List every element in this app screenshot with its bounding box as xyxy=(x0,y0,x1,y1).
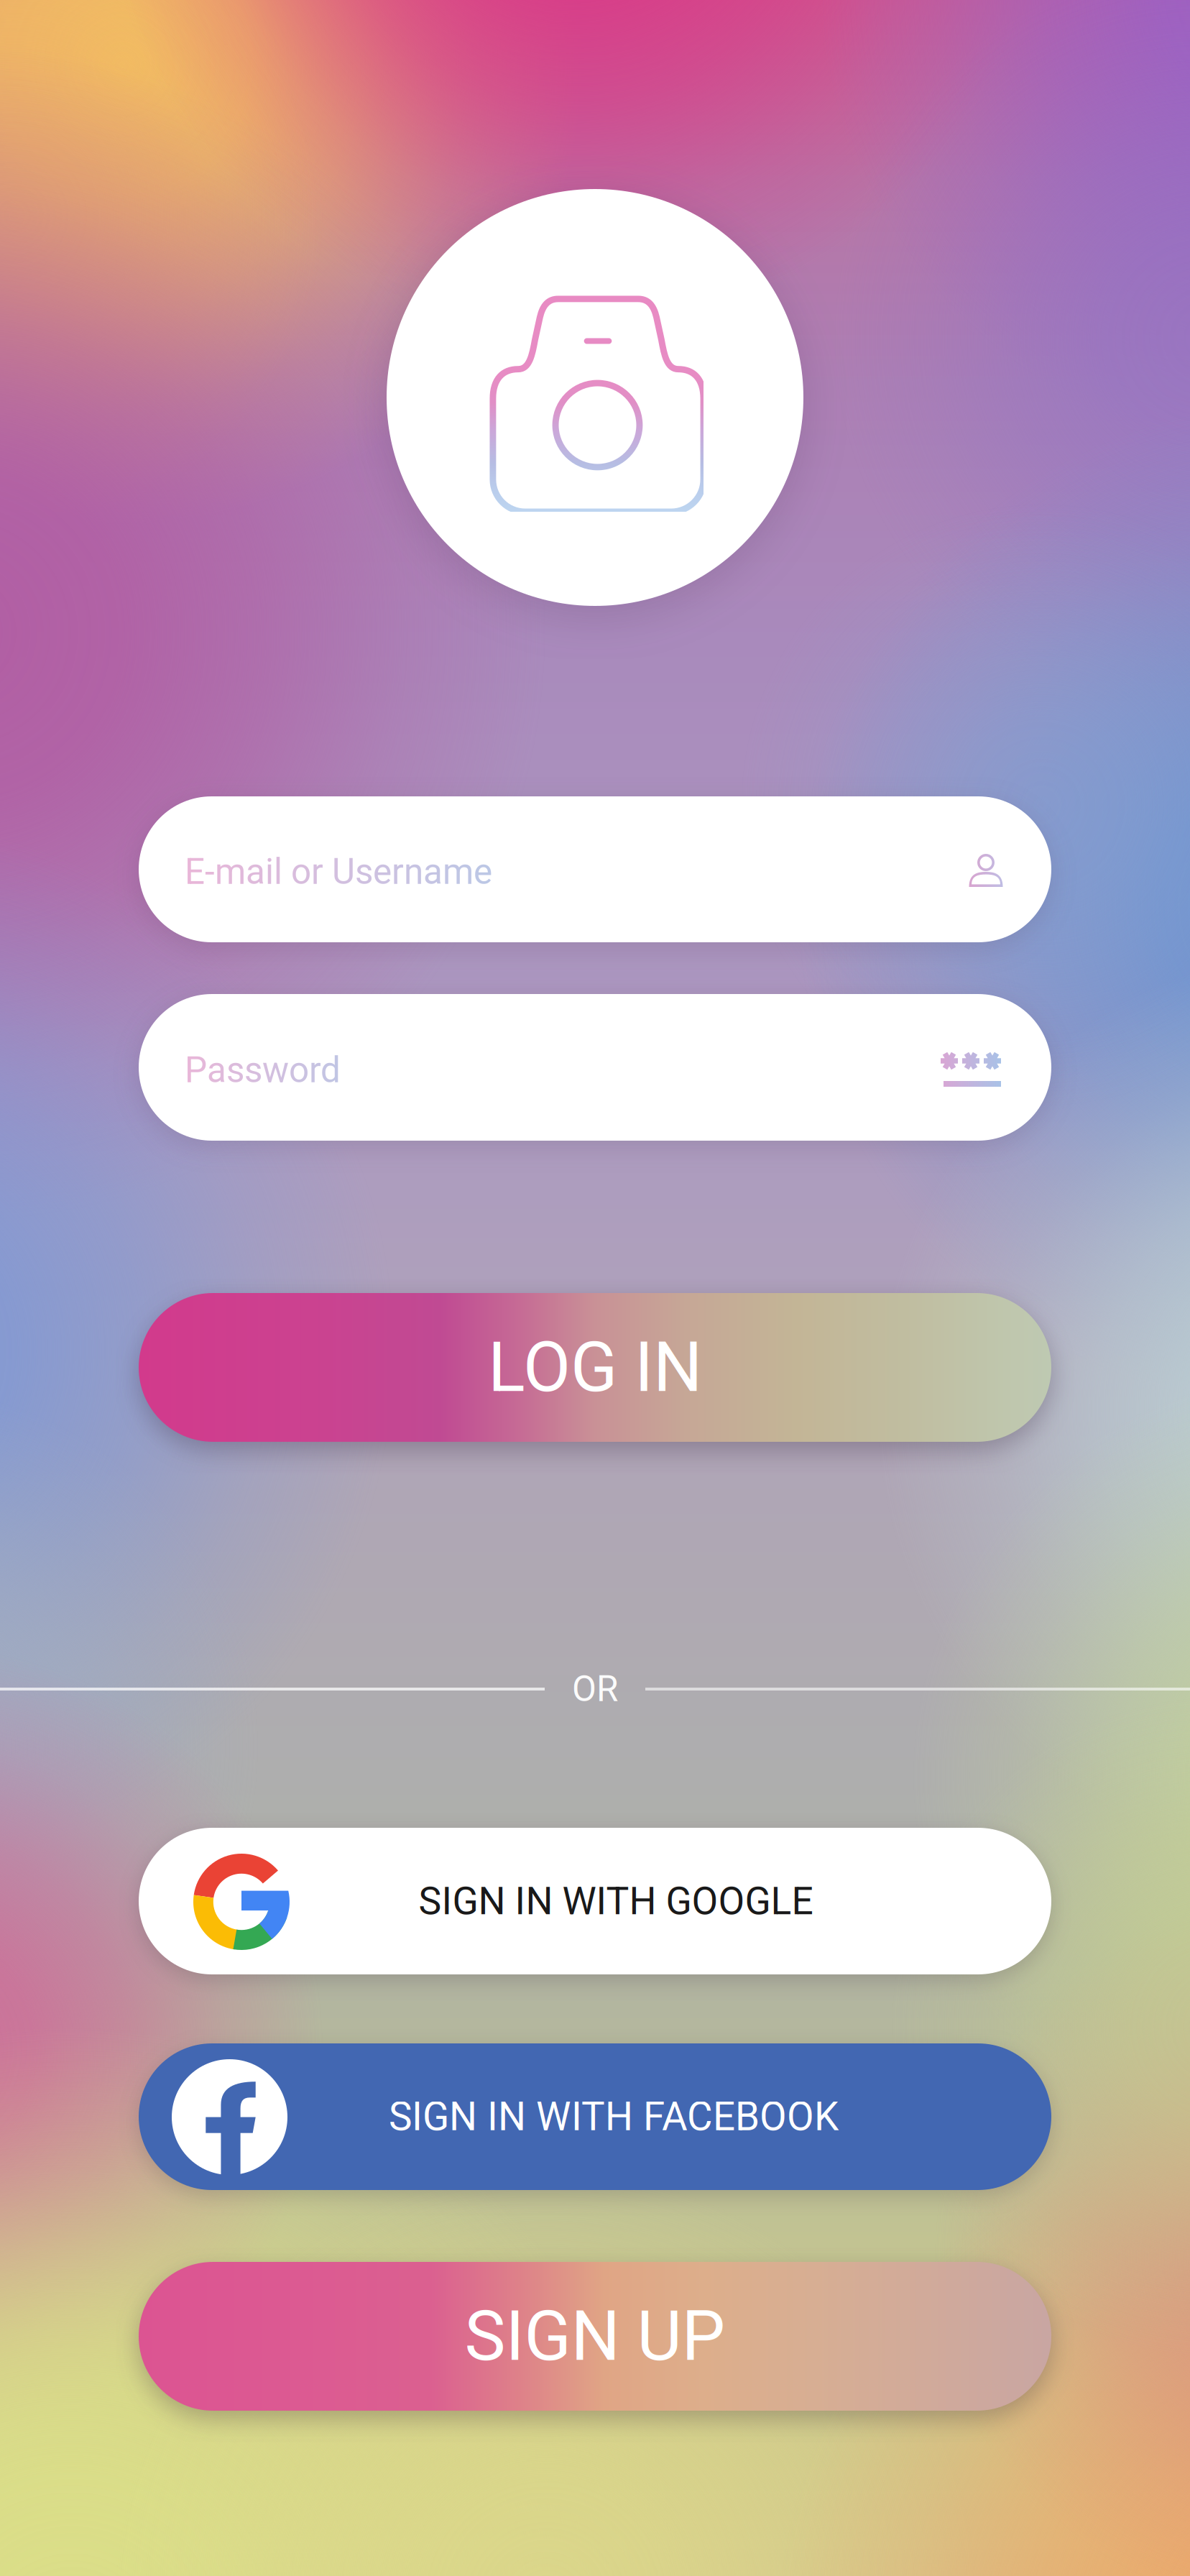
button[interactable]: SIGN IN WITH GOOGLE xyxy=(139,1828,1051,1974)
staticText: LOG IN xyxy=(488,1327,702,1408)
button[interactable] xyxy=(139,796,1051,942)
button[interactable] xyxy=(139,994,1051,1141)
staticText: SIGN IN WITH GOOGLE xyxy=(419,1879,813,1924)
button[interactable]: SIGN UP xyxy=(139,2262,1051,2411)
button[interactable]: LOG IN xyxy=(139,1293,1051,1442)
button[interactable]: SIGN IN WITH FACEBOOK xyxy=(139,2043,1051,2190)
staticText: SIGN IN WITH FACEBOOK xyxy=(389,2094,839,2140)
staticText: SIGN UP xyxy=(465,2296,725,2377)
staticText: OR xyxy=(572,1668,618,1710)
